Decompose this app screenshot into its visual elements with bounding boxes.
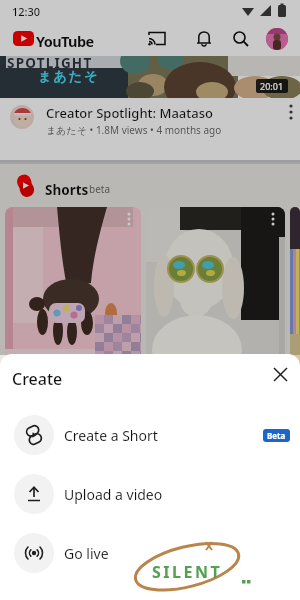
button[interactable]: Go live <box>0 533 300 573</box>
staticText: Upload a video <box>64 485 163 504</box>
button[interactable] <box>5 207 141 367</box>
button[interactable] <box>266 360 294 388</box>
staticText: Beta <box>267 430 286 441</box>
staticText: 20:01 <box>260 80 284 92</box>
staticText: まあたそ • 1.8M views • 4 months ago <box>46 123 222 137</box>
staticText: Creator Spotlight: Maataso <box>46 104 213 122</box>
staticText: Create a Short <box>64 426 158 445</box>
button[interactable]: Creator Spotlight: Maataso <box>0 98 300 160</box>
staticText: SILENT <box>152 561 223 583</box>
staticText: Shorts <box>45 181 89 199</box>
staticText: まあたそ <box>38 68 100 84</box>
button[interactable]: Upload a video <box>0 474 300 514</box>
staticText: 12:30 <box>12 4 41 19</box>
staticText: Create <box>12 368 63 390</box>
button[interactable] <box>193 28 215 50</box>
staticText: YouTube <box>36 31 94 51</box>
button[interactable] <box>146 207 285 367</box>
button[interactable] <box>266 28 288 50</box>
button[interactable] <box>230 28 252 50</box>
staticText: SPOTLIGHT <box>7 56 93 72</box>
staticText: beta <box>89 182 111 196</box>
staticText: Go live <box>64 544 109 563</box>
button[interactable]: SPOTLIGHT <box>0 56 300 98</box>
button[interactable] <box>146 28 168 50</box>
button[interactable]: Create a Short <box>0 415 300 455</box>
